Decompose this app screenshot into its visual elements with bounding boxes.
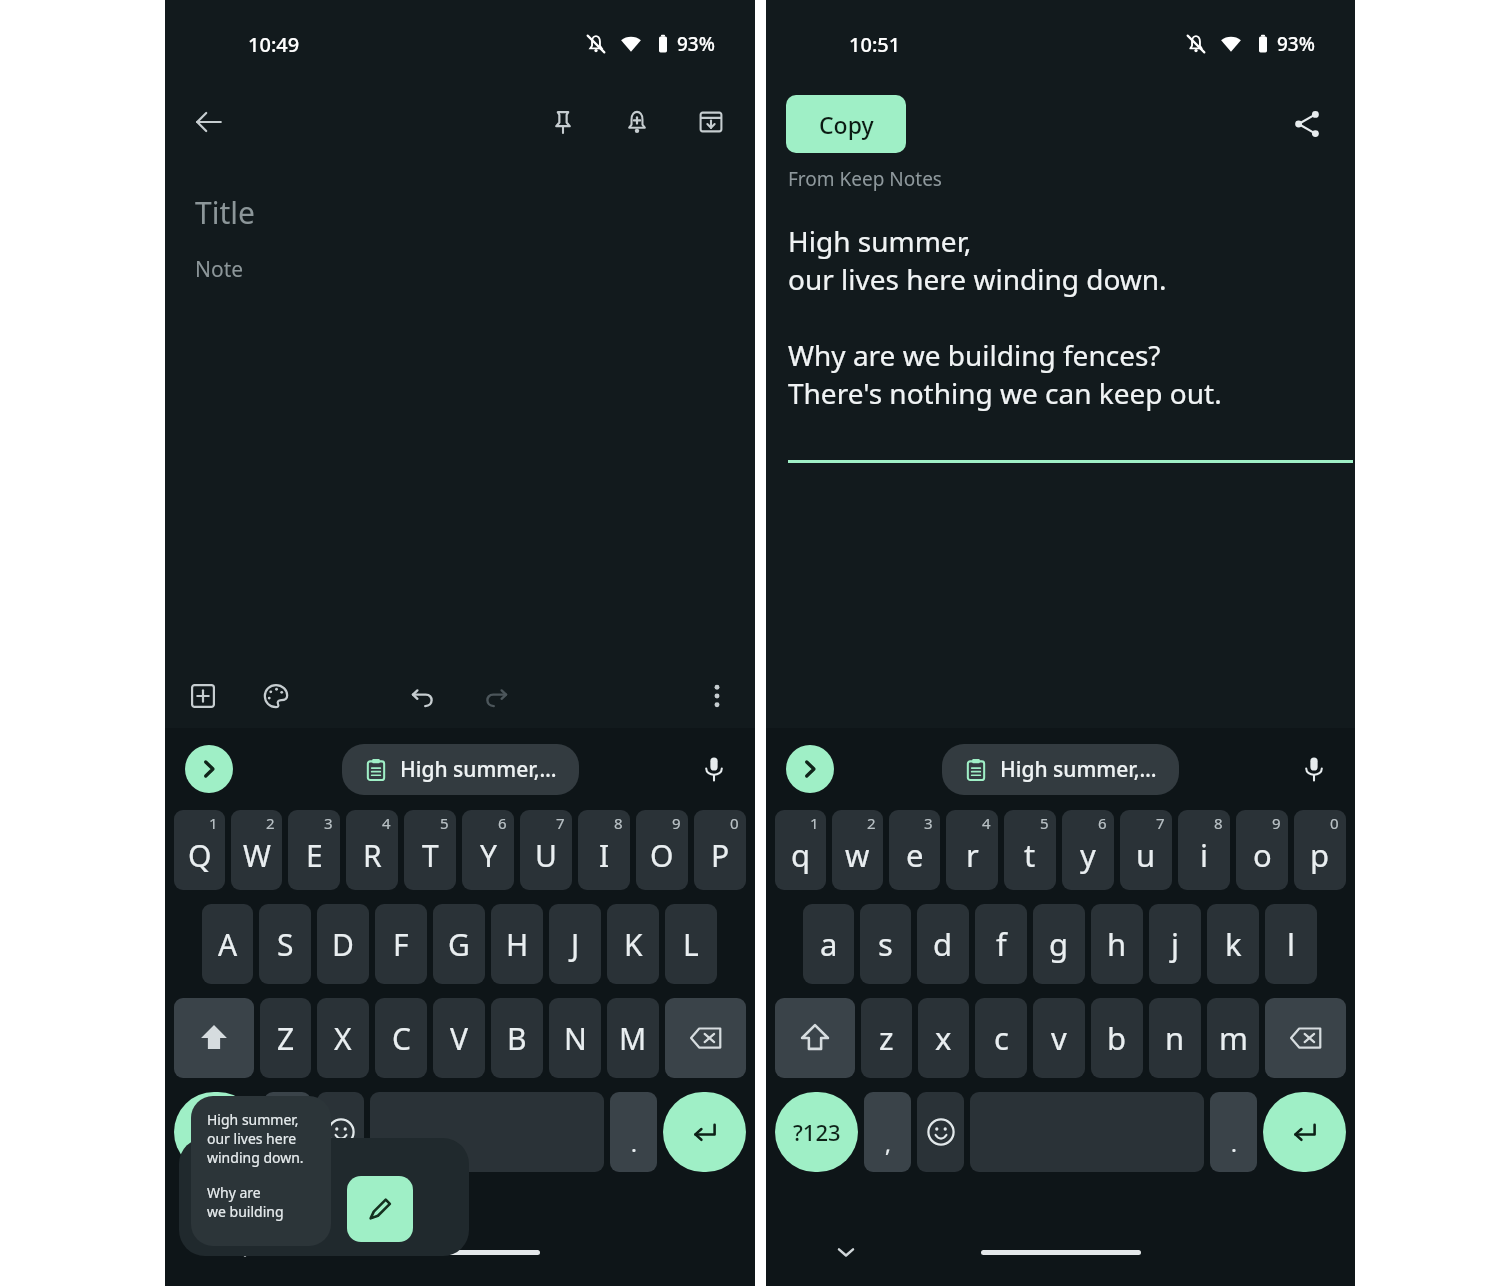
button[interactable]: R bbox=[346, 810, 398, 890]
staticText: K bbox=[624, 924, 643, 965]
button[interactable]: U bbox=[520, 810, 572, 890]
button[interactable]: Shift bbox=[174, 998, 254, 1078]
button[interactable]: K bbox=[607, 904, 659, 984]
button[interactable]: o bbox=[1236, 810, 1288, 890]
button[interactable]: X bbox=[317, 998, 369, 1078]
button[interactable]: Expand toolbar bbox=[786, 745, 834, 793]
button[interactable]: l bbox=[1265, 904, 1317, 984]
staticText: g bbox=[1049, 923, 1069, 965]
button[interactable]: q bbox=[775, 810, 826, 890]
button[interactable]: More options bbox=[695, 674, 739, 718]
button[interactable]: V bbox=[433, 998, 485, 1078]
button[interactable]: A bbox=[202, 904, 253, 984]
button[interactable]: Emoji bbox=[917, 1092, 964, 1172]
button[interactable]: Color palette bbox=[254, 674, 298, 718]
button[interactable]: I bbox=[578, 810, 630, 890]
button[interactable]: v bbox=[1033, 998, 1085, 1078]
button[interactable]: Redo bbox=[474, 674, 518, 718]
button[interactable]: p bbox=[1294, 810, 1346, 890]
button[interactable]: ?123 bbox=[174, 1092, 258, 1172]
button[interactable]: m bbox=[1207, 998, 1259, 1078]
button[interactable]: Edit bbox=[347, 1176, 413, 1242]
button[interactable]: Enter bbox=[663, 1092, 746, 1172]
button[interactable]: Copy bbox=[786, 95, 906, 153]
button[interactable]: High summer, bbox=[191, 1096, 331, 1246]
button[interactable]: Hide keyboard bbox=[225, 1232, 265, 1272]
button[interactable]: Backspace bbox=[665, 998, 746, 1078]
button[interactable]: ?123 bbox=[775, 1092, 858, 1172]
button[interactable]: u bbox=[1120, 810, 1172, 890]
staticText: r bbox=[966, 834, 979, 876]
button[interactable]: Hide keyboard bbox=[826, 1232, 866, 1272]
staticText: Why are bbox=[207, 1183, 261, 1202]
button[interactable]: D bbox=[317, 904, 369, 984]
staticText: 10:51 bbox=[849, 31, 901, 58]
button[interactable]: k bbox=[1207, 904, 1259, 984]
staticText: v bbox=[1051, 1017, 1067, 1059]
button[interactable]: Backspace bbox=[1265, 998, 1346, 1078]
button[interactable]: . bbox=[610, 1092, 657, 1172]
button[interactable]: J bbox=[549, 904, 601, 984]
staticText: H bbox=[506, 924, 529, 965]
button[interactable]: W bbox=[231, 810, 282, 890]
button[interactable]: H bbox=[491, 904, 543, 984]
button[interactable]: , bbox=[864, 1092, 911, 1172]
button[interactable]: Back bbox=[185, 98, 233, 146]
button[interactable]: Voice input bbox=[1291, 746, 1337, 792]
button[interactable]: s bbox=[860, 904, 911, 984]
button[interactable]: . bbox=[1210, 1092, 1257, 1172]
button[interactable]: Y bbox=[462, 810, 514, 890]
button[interactable]: Pin bbox=[539, 98, 587, 146]
button[interactable]: r bbox=[946, 810, 998, 890]
button[interactable]: Share bbox=[1283, 100, 1331, 148]
button[interactable]: Add bbox=[181, 674, 225, 718]
button[interactable]: n bbox=[1149, 998, 1201, 1078]
button[interactable]: S bbox=[259, 904, 311, 984]
button[interactable]: O bbox=[636, 810, 688, 890]
button[interactable]: M bbox=[607, 998, 659, 1078]
button[interactable]: a bbox=[803, 904, 854, 984]
button[interactable]: Z bbox=[260, 998, 311, 1078]
button[interactable]: T bbox=[404, 810, 456, 890]
staticText: . bbox=[1231, 1128, 1237, 1158]
staticText: M bbox=[619, 1018, 647, 1059]
staticText: y bbox=[1080, 834, 1096, 876]
button[interactable]: t bbox=[1004, 810, 1056, 890]
button[interactable]: x bbox=[918, 998, 969, 1078]
button[interactable]: c bbox=[975, 998, 1027, 1078]
button[interactable]: j bbox=[1149, 904, 1201, 984]
button[interactable]: E bbox=[288, 810, 340, 890]
button[interactable]: g bbox=[1033, 904, 1085, 984]
button[interactable]: Expand toolbar bbox=[185, 745, 233, 793]
button[interactable]: h bbox=[1091, 904, 1143, 984]
button[interactable]: C bbox=[375, 998, 427, 1078]
button[interactable]: i bbox=[1178, 810, 1230, 890]
button[interactable]: Space bbox=[370, 1092, 604, 1172]
button[interactable]: Shift bbox=[775, 998, 855, 1078]
staticText: 8 bbox=[1214, 813, 1223, 833]
button[interactable]: d bbox=[917, 904, 969, 984]
button[interactable]: High summer,… bbox=[342, 744, 579, 795]
button[interactable]: z bbox=[861, 998, 912, 1078]
button[interactable]: L bbox=[665, 904, 717, 984]
button[interactable]: Voice input bbox=[691, 746, 737, 792]
button[interactable]: F bbox=[375, 904, 427, 984]
button[interactable]: P bbox=[694, 810, 746, 890]
button[interactable]: f bbox=[975, 904, 1027, 984]
button[interactable]: High summer,… bbox=[942, 744, 1179, 795]
button[interactable]: Reminder bbox=[613, 98, 661, 146]
button[interactable]: , bbox=[264, 1092, 311, 1172]
button[interactable]: B bbox=[491, 998, 543, 1078]
button[interactable]: y bbox=[1062, 810, 1114, 890]
button[interactable]: e bbox=[889, 810, 940, 890]
button[interactable]: Q bbox=[174, 810, 225, 890]
button[interactable]: N bbox=[549, 998, 601, 1078]
button[interactable]: w bbox=[832, 810, 883, 890]
button[interactable]: Undo bbox=[401, 674, 445, 718]
button[interactable]: G bbox=[433, 904, 485, 984]
button[interactable]: Emoji bbox=[317, 1092, 364, 1172]
button[interactable]: Archive bbox=[687, 98, 735, 146]
button[interactable]: b bbox=[1091, 998, 1143, 1078]
button[interactable]: Enter bbox=[1263, 1092, 1346, 1172]
